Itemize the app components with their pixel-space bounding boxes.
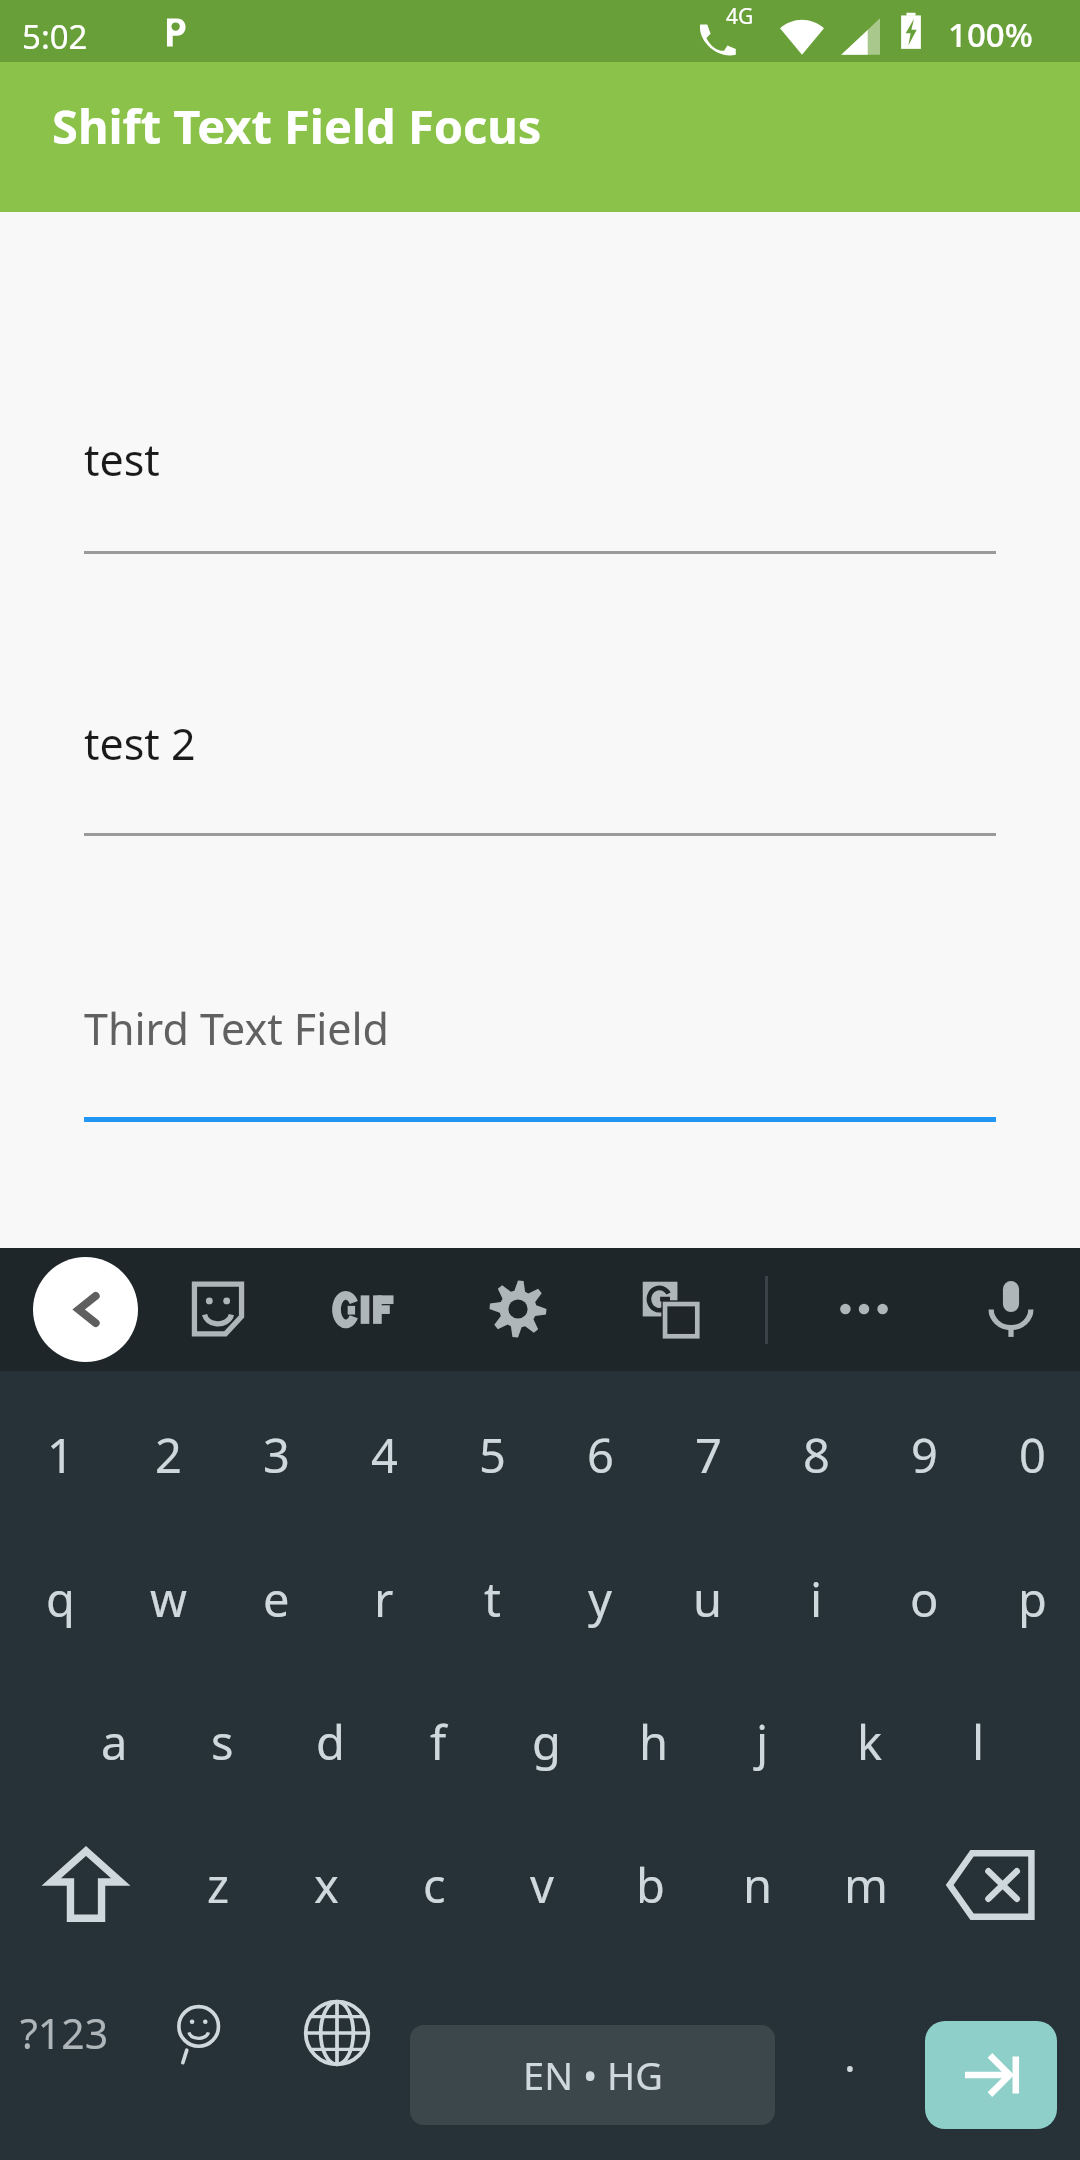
button[interactable]: 3	[222, 1385, 330, 1525]
button[interactable]: t	[438, 1529, 546, 1669]
staticText: w	[150, 1567, 187, 1631]
staticText: test	[84, 430, 160, 489]
staticText: t	[484, 1567, 501, 1631]
button[interactable]: n	[704, 1815, 812, 1955]
button[interactable]: v	[488, 1815, 596, 1955]
button[interactable]: f	[384, 1672, 492, 1812]
staticText: 4	[371, 1423, 398, 1487]
button[interactable]: c	[380, 1815, 488, 1955]
staticText: Third Text Field	[84, 999, 390, 1058]
staticText: c	[423, 1853, 446, 1917]
button[interactable]: Translate	[620, 1259, 720, 1359]
button[interactable]: l	[924, 1672, 1032, 1812]
button[interactable]: z	[164, 1815, 272, 1955]
staticText: Shift Text Field Focus	[52, 94, 542, 158]
staticText: y	[588, 1567, 612, 1631]
staticText: v	[530, 1853, 554, 1917]
button[interactable]: Stickers	[168, 1259, 268, 1359]
button[interactable]: d	[276, 1672, 384, 1812]
staticText: 9	[911, 1423, 938, 1487]
button[interactable]: 7	[654, 1385, 762, 1525]
button[interactable]: s	[168, 1672, 276, 1812]
button[interactable]: test	[84, 378, 996, 498]
button[interactable]: j	[708, 1672, 816, 1812]
staticText: 4G	[726, 2, 754, 31]
button[interactable]: GIF	[315, 1259, 415, 1359]
staticText: o	[910, 1567, 939, 1631]
staticText: a	[101, 1710, 128, 1774]
button[interactable]: k	[816, 1672, 924, 1812]
button[interactable]: Change language	[272, 1963, 402, 2103]
button[interactable]: Third Text Field	[84, 947, 996, 1067]
button[interactable]: r	[330, 1529, 438, 1669]
staticText: 5	[479, 1423, 506, 1487]
button[interactable]: b	[596, 1815, 704, 1955]
staticText: k	[857, 1710, 883, 1774]
staticText: z	[207, 1853, 230, 1917]
button[interactable]: 9	[870, 1385, 978, 1525]
button[interactable]: q	[6, 1529, 114, 1669]
button[interactable]: m	[812, 1815, 920, 1955]
staticText: 3	[263, 1423, 290, 1487]
staticText: 2	[155, 1423, 182, 1487]
button[interactable]: u	[654, 1529, 762, 1669]
button[interactable]: g	[492, 1672, 600, 1812]
staticText: g	[532, 1710, 561, 1774]
button[interactable]: More options	[814, 1259, 914, 1359]
button[interactable]: p	[978, 1529, 1080, 1669]
button[interactable]: 2	[114, 1385, 222, 1525]
staticText: 7	[695, 1423, 722, 1487]
staticText: p	[1018, 1567, 1047, 1631]
button[interactable]: 4	[330, 1385, 438, 1525]
button[interactable]: EN • HG	[410, 2025, 775, 2125]
button[interactable]: o	[870, 1529, 978, 1669]
button[interactable]: .	[795, 1963, 905, 2103]
button[interactable]: ?123	[0, 1963, 128, 2103]
button[interactable]: Next field	[925, 2021, 1057, 2129]
button[interactable]: Back	[33, 1257, 138, 1362]
staticText: 5:02	[22, 14, 88, 59]
staticText: 100%	[948, 12, 1033, 57]
staticText: 1	[47, 1423, 74, 1487]
staticText: m	[844, 1853, 888, 1917]
button[interactable]: test 2	[84, 662, 996, 782]
staticText: h	[639, 1710, 669, 1774]
staticText: test 2	[84, 714, 196, 773]
button[interactable]: x	[272, 1815, 380, 1955]
staticText: r	[374, 1567, 394, 1631]
button[interactable]: Shift	[10, 1815, 162, 1955]
staticText: ?123	[20, 2005, 109, 2061]
staticText: f	[430, 1710, 447, 1774]
staticText: s	[211, 1710, 234, 1774]
staticText: 8	[803, 1423, 830, 1487]
button[interactable]: 0	[978, 1385, 1080, 1525]
button[interactable]: 1	[6, 1385, 114, 1525]
staticText: u	[693, 1567, 723, 1631]
button[interactable]: 5	[438, 1385, 546, 1525]
staticText: EN • HG	[523, 2049, 663, 2101]
staticText: q	[46, 1567, 75, 1631]
staticText: n	[743, 1853, 773, 1917]
staticText: b	[636, 1853, 665, 1917]
button[interactable]: a	[60, 1672, 168, 1812]
button[interactable]: e	[222, 1529, 330, 1669]
staticText: j	[756, 1710, 769, 1774]
staticText: d	[316, 1710, 345, 1774]
staticText: i	[810, 1567, 823, 1631]
button[interactable]: 6	[546, 1385, 654, 1525]
button[interactable]: y	[546, 1529, 654, 1669]
button[interactable]: 8	[762, 1385, 870, 1525]
button[interactable]: i	[762, 1529, 870, 1669]
staticText: l	[972, 1710, 985, 1774]
button[interactable]: Settings	[468, 1259, 568, 1359]
button[interactable]: Voice input	[961, 1259, 1061, 1359]
staticText: e	[263, 1567, 290, 1631]
staticText: x	[314, 1853, 339, 1917]
button[interactable]: h	[600, 1672, 708, 1812]
staticText: 6	[587, 1423, 614, 1487]
button[interactable]: Emoji	[130, 1963, 270, 2103]
staticText: 0	[1019, 1423, 1046, 1487]
button[interactable]: w	[114, 1529, 222, 1669]
staticText: .	[844, 2025, 856, 2085]
button[interactable]: Backspace	[915, 1815, 1067, 1955]
